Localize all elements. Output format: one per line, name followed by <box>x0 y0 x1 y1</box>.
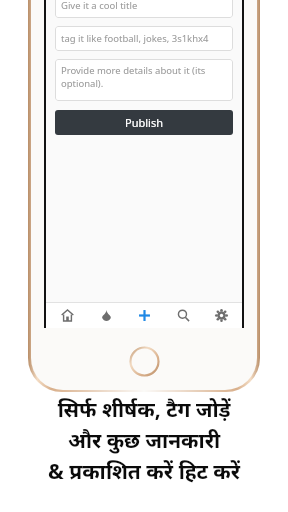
staticText: Provide more details about it (its optio… <box>61 64 227 90</box>
staticText: सिर्फ शीर्षक, टैग जोड़ें <box>0 395 288 424</box>
button[interactable]: Home <box>54 302 80 328</box>
staticText: Publish <box>125 115 163 130</box>
button[interactable]: Trending <box>93 302 119 328</box>
button[interactable]: Settings <box>208 302 234 328</box>
button[interactable]: Search <box>170 302 196 328</box>
button[interactable]: tag it like football, jokes, 3s1khx4 <box>55 26 233 51</box>
button[interactable]: Give it a cool title <box>55 0 233 18</box>
staticText: और कुछ जानकारी <box>0 426 288 455</box>
button[interactable]: Publish <box>55 110 233 135</box>
staticText: tag it like football, jokes, 3s1khx4 <box>61 32 209 45</box>
staticText: & प्रकाशित करें हिट करें <box>0 457 288 486</box>
button[interactable]: Create post <box>131 302 157 328</box>
button[interactable]: Provide more details about it (its optio… <box>55 59 233 101</box>
other: Home button <box>129 346 160 377</box>
staticText: Give it a cool title <box>61 0 138 12</box>
